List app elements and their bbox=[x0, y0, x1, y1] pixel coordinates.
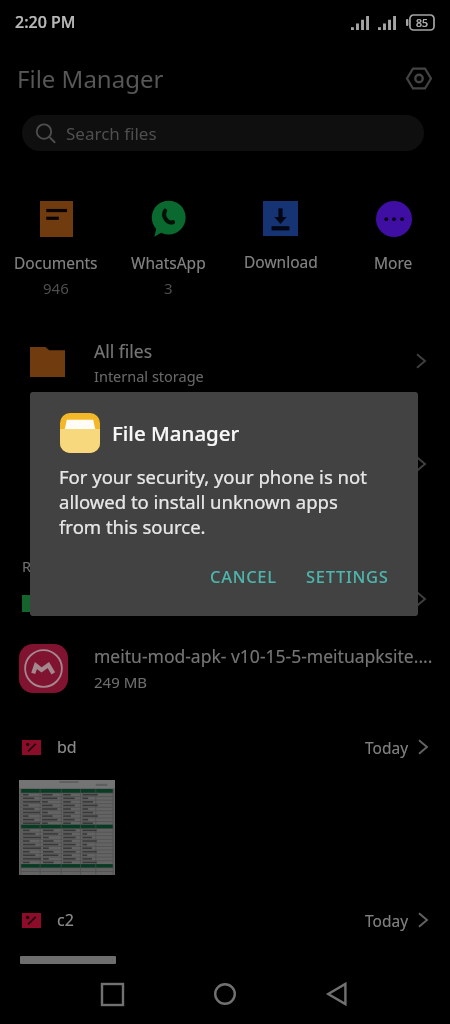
staticText: 2:20 PM bbox=[15, 11, 76, 33]
staticText: Search files bbox=[66, 122, 157, 145]
staticText: 85 bbox=[416, 16, 429, 30]
staticText: Download bbox=[244, 251, 318, 272]
staticText: Internal storage bbox=[94, 366, 204, 386]
button[interactable]: Back bbox=[311, 968, 363, 1020]
staticText: File Manager bbox=[112, 419, 240, 447]
staticText: WhatsApp bbox=[131, 252, 206, 273]
staticText: c2 bbox=[57, 909, 74, 931]
button[interactable]: Settings bbox=[402, 61, 436, 95]
button[interactable]: meitu-mod-apk- v10-15-5-meituapksite.... bbox=[0, 629, 450, 707]
staticText: 249 MB bbox=[94, 672, 147, 692]
button[interactable]: SETTINGS bbox=[298, 558, 397, 594]
button[interactable]: Documents bbox=[0, 201, 112, 298]
button[interactable]: CANCEL bbox=[202, 558, 285, 594]
button[interactable]: bd bbox=[0, 722, 450, 772]
button[interactable]: Download bbox=[224, 201, 337, 272]
staticText: File Manager bbox=[17, 62, 164, 95]
button[interactable]: Recents bbox=[86, 968, 138, 1020]
staticText: Today bbox=[365, 910, 409, 931]
staticText: Today bbox=[365, 737, 409, 758]
staticText: Documents bbox=[14, 252, 98, 273]
staticText: SETTINGS bbox=[306, 565, 389, 587]
staticText: Recent files bbox=[22, 556, 100, 576]
button[interactable]: Home bbox=[199, 968, 251, 1020]
button[interactable]: WhatsApp bbox=[112, 201, 224, 298]
button[interactable]: All files bbox=[0, 332, 450, 392]
staticText: CANCEL bbox=[210, 565, 277, 587]
button[interactable]: c2 bbox=[0, 895, 450, 945]
staticText: 3 bbox=[164, 278, 173, 298]
staticText: meitu-mod-apk- v10-15-5-meituapksite.... bbox=[94, 644, 433, 668]
staticText: For your security, your phone is not all… bbox=[59, 464, 384, 539]
button[interactable]: More bbox=[337, 201, 450, 273]
staticText: All files bbox=[94, 339, 153, 363]
staticText: 946 bbox=[43, 278, 69, 298]
staticText: bd bbox=[57, 736, 77, 758]
staticText: More bbox=[374, 252, 413, 273]
button[interactable]: Search files bbox=[22, 115, 424, 151]
